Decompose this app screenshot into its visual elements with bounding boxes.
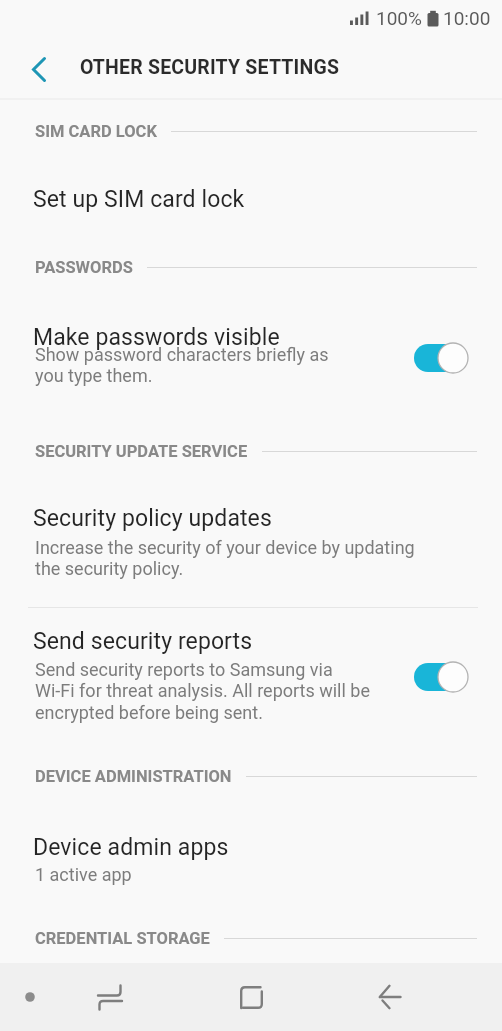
staticText: OTHER SECURITY SETTINGS	[80, 56, 340, 79]
staticText: SECURITY UPDATE SERVICE	[35, 442, 248, 461]
button[interactable]: Make passwords visible	[33, 313, 413, 361]
button[interactable]	[410, 655, 470, 699]
button[interactable]	[86, 973, 134, 1021]
staticText: Send security reports	[33, 628, 253, 655]
staticText: Send security reports to Samsung via Wi-…	[35, 659, 370, 724]
button[interactable]	[366, 973, 414, 1021]
button[interactable]	[14, 45, 62, 93]
staticText: 1 active app	[35, 864, 132, 885]
staticText: Show password characters briefly as you …	[35, 344, 329, 387]
button[interactable]	[227, 973, 275, 1021]
staticText: DEVICE ADMINISTRATION	[35, 767, 232, 786]
staticText: Device admin apps	[33, 834, 229, 861]
staticText: 10:00	[443, 7, 491, 29]
staticText: SIM CARD LOCK	[35, 122, 157, 141]
staticText: Make passwords visible	[33, 324, 280, 351]
staticText: Increase the security of your device by …	[35, 537, 415, 580]
button[interactable]	[18, 985, 42, 1009]
button[interactable]: Send security reports	[33, 617, 413, 665]
button[interactable]: Device admin apps	[33, 823, 413, 871]
staticText: CREDENTIAL STORAGE	[35, 929, 210, 948]
staticText: 100%	[376, 7, 422, 29]
staticText: Security policy updates	[33, 505, 272, 532]
staticText: Set up SIM card lock	[33, 186, 245, 213]
staticText: PASSWORDS	[35, 258, 133, 277]
button[interactable]: Security policy updates	[33, 494, 413, 542]
button[interactable]: Set up SIM card lock	[33, 175, 413, 223]
button[interactable]	[410, 336, 470, 380]
